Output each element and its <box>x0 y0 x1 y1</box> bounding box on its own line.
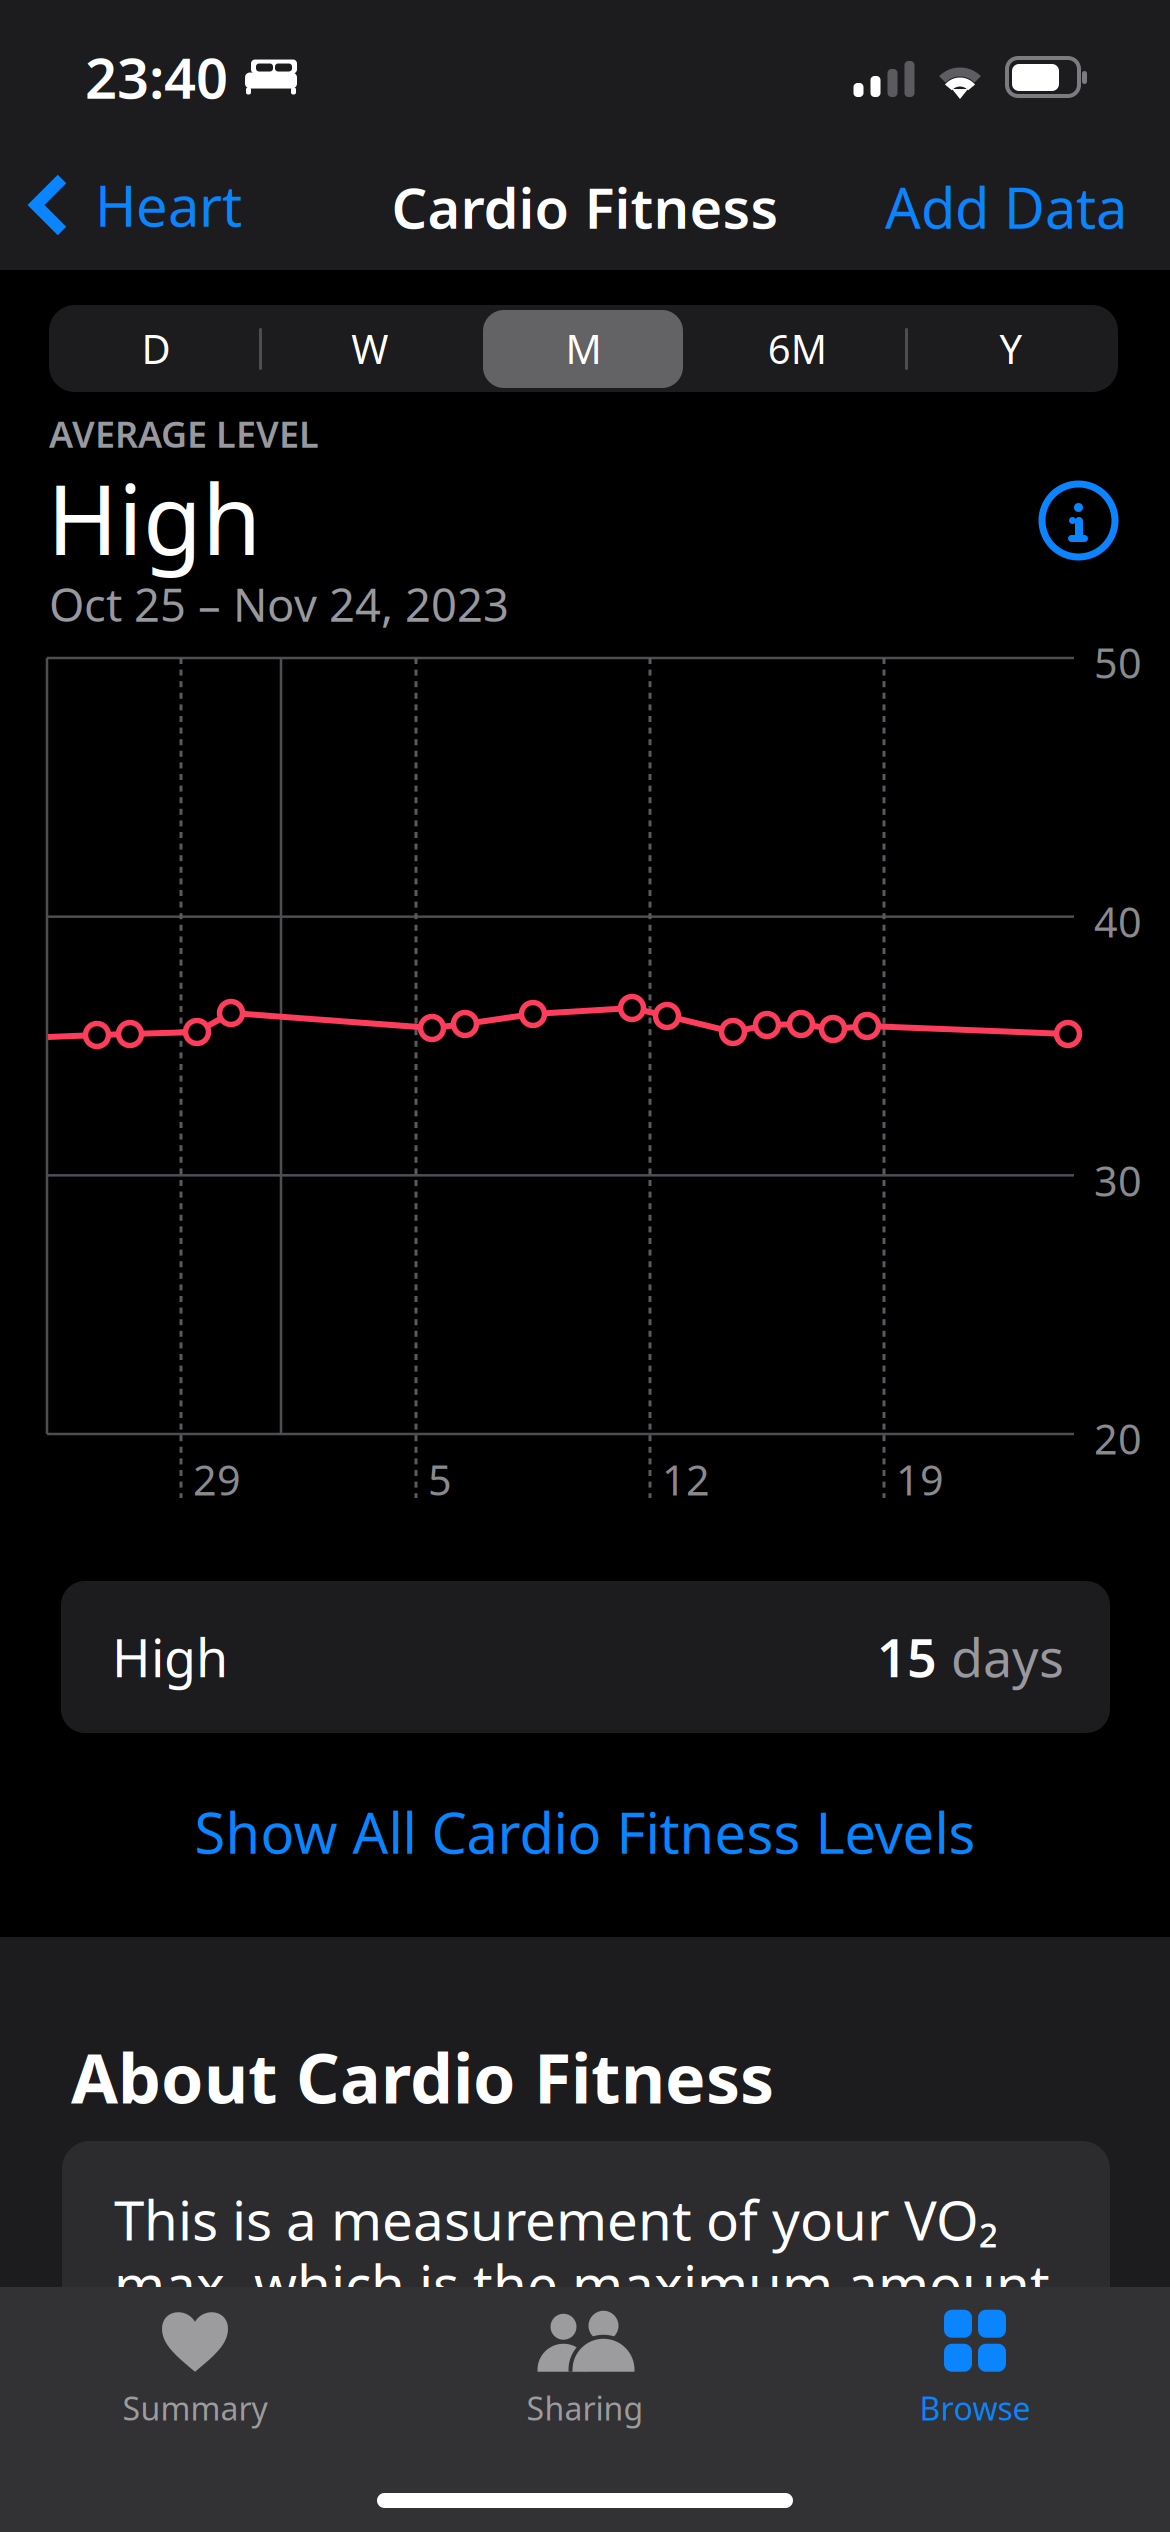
button[interactable]: Heart <box>28 160 288 250</box>
staticText: 30 <box>1094 1153 1142 1208</box>
button[interactable]: D <box>49 305 263 392</box>
button[interactable]: Show All Cardio Fitness Levels <box>0 1797 1170 1867</box>
button[interactable]: About Cardio Fitness <box>1032 474 1125 567</box>
staticText: D <box>141 322 170 375</box>
staticText: 20 <box>1094 1411 1142 1466</box>
staticText: M <box>565 322 601 375</box>
staticText: Sharing <box>526 2387 643 2429</box>
staticText: 12 <box>662 1452 710 1507</box>
staticText: 50 <box>1094 635 1142 690</box>
button[interactable]: W <box>263 305 477 392</box>
staticText: Add Data <box>885 170 1127 244</box>
button[interactable]: 6M <box>690 305 904 392</box>
staticText: 5 <box>428 1452 452 1507</box>
button[interactable]: Add Data <box>797 167 1127 247</box>
staticText: 6M <box>768 322 827 375</box>
button[interactable]: Browse <box>780 2299 1170 2439</box>
button[interactable]: High <box>61 1581 1110 1733</box>
staticText: 19 <box>896 1452 944 1507</box>
staticText: Oct 25 – Nov 24, 2023 <box>49 574 509 634</box>
button[interactable]: Sharing <box>390 2299 780 2439</box>
staticText: Cardio Fitness <box>391 170 778 244</box>
staticText: Summary <box>122 2387 267 2429</box>
staticText: W <box>351 322 388 375</box>
staticText: max, which is the maximum amount <box>114 2248 1050 2320</box>
staticText: Browse <box>919 2387 1030 2429</box>
button[interactable]: M <box>477 305 690 392</box>
staticText: days <box>937 1622 1064 1692</box>
staticText: High <box>47 454 261 581</box>
staticText: 40 <box>1094 894 1142 949</box>
staticText: High <box>112 1622 228 1692</box>
staticText: Y <box>1000 322 1023 375</box>
button[interactable]: Y <box>904 305 1118 392</box>
staticText: 23:40 <box>85 40 228 114</box>
staticText: This is a measurement of your VO₂ <box>114 2183 998 2256</box>
staticText: 29 <box>193 1452 241 1507</box>
staticText: AVERAGE LEVEL <box>49 410 319 458</box>
button[interactable]: Summary <box>0 2299 390 2439</box>
staticText: 15 <box>877 1622 937 1692</box>
staticText: Show All Cardio Fitness Levels <box>194 1795 975 1869</box>
staticText: About Cardio Fitness <box>71 2032 774 2122</box>
staticText: Heart <box>95 168 242 242</box>
